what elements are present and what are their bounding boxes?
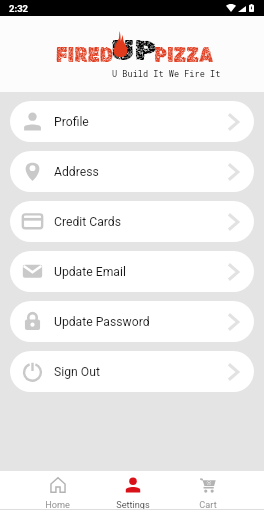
button[interactable]: Credit Cards [10,201,254,242]
staticText: Address [54,165,228,179]
staticText: U Build It We Fire It [112,68,221,79]
staticText: Update Email [54,265,228,279]
staticText: Profile [54,115,228,129]
button[interactable]: Address [10,151,254,192]
staticText: Settings [116,499,150,510]
button[interactable]: Update Password [10,301,254,342]
button[interactable]: Home [20,471,95,512]
staticText: Cart [199,499,217,510]
staticText: Home [45,499,70,510]
staticText: Credit Cards [54,215,228,229]
staticText: Update Password [54,315,228,329]
staticText: PIZZA [154,42,213,67]
button[interactable]: Sign Out [10,351,254,392]
button[interactable]: Cart [170,471,245,512]
staticText: 2:32 [9,3,29,14]
staticText: Sign Out [54,365,228,379]
staticText: FIRED [56,42,114,67]
button[interactable]: Update Email [10,251,254,292]
staticText: UP [111,35,157,67]
button[interactable]: Settings [95,471,170,512]
button[interactable]: Profile [10,101,254,142]
